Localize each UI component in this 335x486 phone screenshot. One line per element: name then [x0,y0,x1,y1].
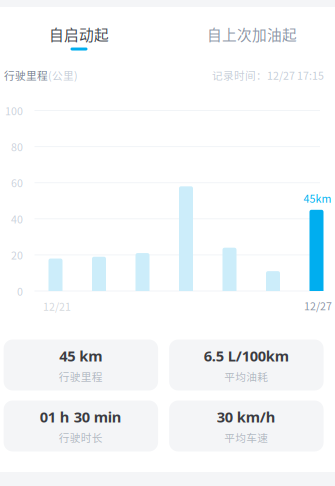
staticText: 行驶里程 [59,368,103,384]
staticText: 自上次加油起 [207,23,297,45]
button[interactable]: 6.5 L/100km [169,339,324,390]
staticText: 行驶里程 [4,67,48,83]
button[interactable]: 自启动起 [0,19,158,61]
button[interactable]: 01 h 30 min [4,400,158,451]
staticText: 20 [11,247,23,263]
staticText: 平均车速 [224,429,268,445]
staticText: 自启动起 [49,23,109,45]
staticText: 30 km/h [217,407,276,426]
staticText: 0 [17,283,23,299]
staticText: 12/21 [43,298,71,314]
staticText: 记录时间：12/27 17:15 [212,67,324,83]
staticText: 45 km [59,346,102,365]
staticText: 80 [11,139,23,154]
button[interactable]: 45 km [4,339,158,390]
staticText: 45km [303,190,331,206]
staticText: 40 [11,211,23,226]
staticText: 行驶时长 [59,429,103,445]
staticText: 01 h 30 min [40,407,122,426]
staticText: 60 [11,175,23,190]
staticText: (公里) [48,67,78,83]
button[interactable]: 自上次加油起 [173,19,331,61]
button[interactable]: 30 km/h [169,400,324,451]
staticText: 平均油耗 [224,368,268,384]
staticText: 100 [5,103,23,118]
staticText: 6.5 L/100km [204,346,289,365]
staticText: 12/27 [304,298,332,313]
